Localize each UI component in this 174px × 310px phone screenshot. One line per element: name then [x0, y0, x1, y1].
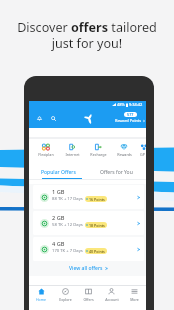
- button[interactable]: Home: [29, 288, 53, 302]
- button[interactable]: 2 GB: [33, 211, 144, 235]
- staticText: Internet: [65, 152, 80, 157]
- staticText: Home: [36, 297, 46, 302]
- button[interactable]: GP S: [137, 144, 146, 157]
- staticText: 48%: [117, 102, 125, 107]
- button[interactable]: Explore: [53, 288, 77, 302]
- staticText: Account: [105, 297, 119, 302]
- staticText: 40 Points: [89, 249, 105, 253]
- staticText: More: [130, 297, 139, 302]
- staticText: Popular Offers: [41, 169, 76, 176]
- button[interactable]: View all offers: [33, 261, 144, 276]
- button[interactable]: Recharge: [85, 144, 111, 157]
- staticText: 4 GB: [52, 240, 65, 248]
- button[interactable]: 577: [115, 112, 145, 123]
- staticText: 1 GB: [52, 188, 65, 196]
- button[interactable]: Flexiplan: [33, 144, 59, 157]
- staticText: Flexiplan: [38, 152, 54, 157]
- button[interactable]: Internet: [59, 144, 85, 157]
- staticText: 2 GB: [52, 214, 65, 222]
- staticText: 170 TK + 7 Days: [52, 248, 83, 254]
- button[interactable]: Account: [100, 288, 123, 302]
- staticText: Offers: [83, 297, 94, 302]
- staticText: Discover offers tailored just for you!: [0, 19, 174, 52]
- staticText: 18 Points: [89, 223, 105, 227]
- staticText: Reward Points: [115, 118, 142, 123]
- button[interactable]: Search: [50, 115, 57, 122]
- staticText: 88 TK + 17 Days: [52, 196, 83, 202]
- button[interactable]: Popular Offers: [29, 169, 87, 176]
- staticText: Explore: [59, 297, 72, 302]
- staticText: Recharge: [90, 152, 107, 157]
- staticText: 16 Points: [89, 197, 105, 201]
- button[interactable]: Rewards: [111, 144, 137, 157]
- button[interactable]: Offers for You: [87, 169, 146, 176]
- button[interactable]: Notifications: [36, 115, 43, 122]
- button[interactable]: More: [123, 288, 146, 302]
- staticText: Rewards: [117, 152, 132, 157]
- staticText: 577: [127, 112, 134, 117]
- button[interactable]: 4 GB: [33, 237, 144, 261]
- staticText: View all offers: [69, 265, 103, 272]
- staticText: GP S: [140, 152, 146, 157]
- staticText: 58 TK + 12 Days: [52, 222, 83, 228]
- staticText: 9:34:42: [129, 102, 143, 107]
- button[interactable]: 1 GB: [33, 185, 144, 209]
- staticText: Offers for You: [100, 169, 133, 176]
- button[interactable]: Offers: [77, 288, 100, 302]
